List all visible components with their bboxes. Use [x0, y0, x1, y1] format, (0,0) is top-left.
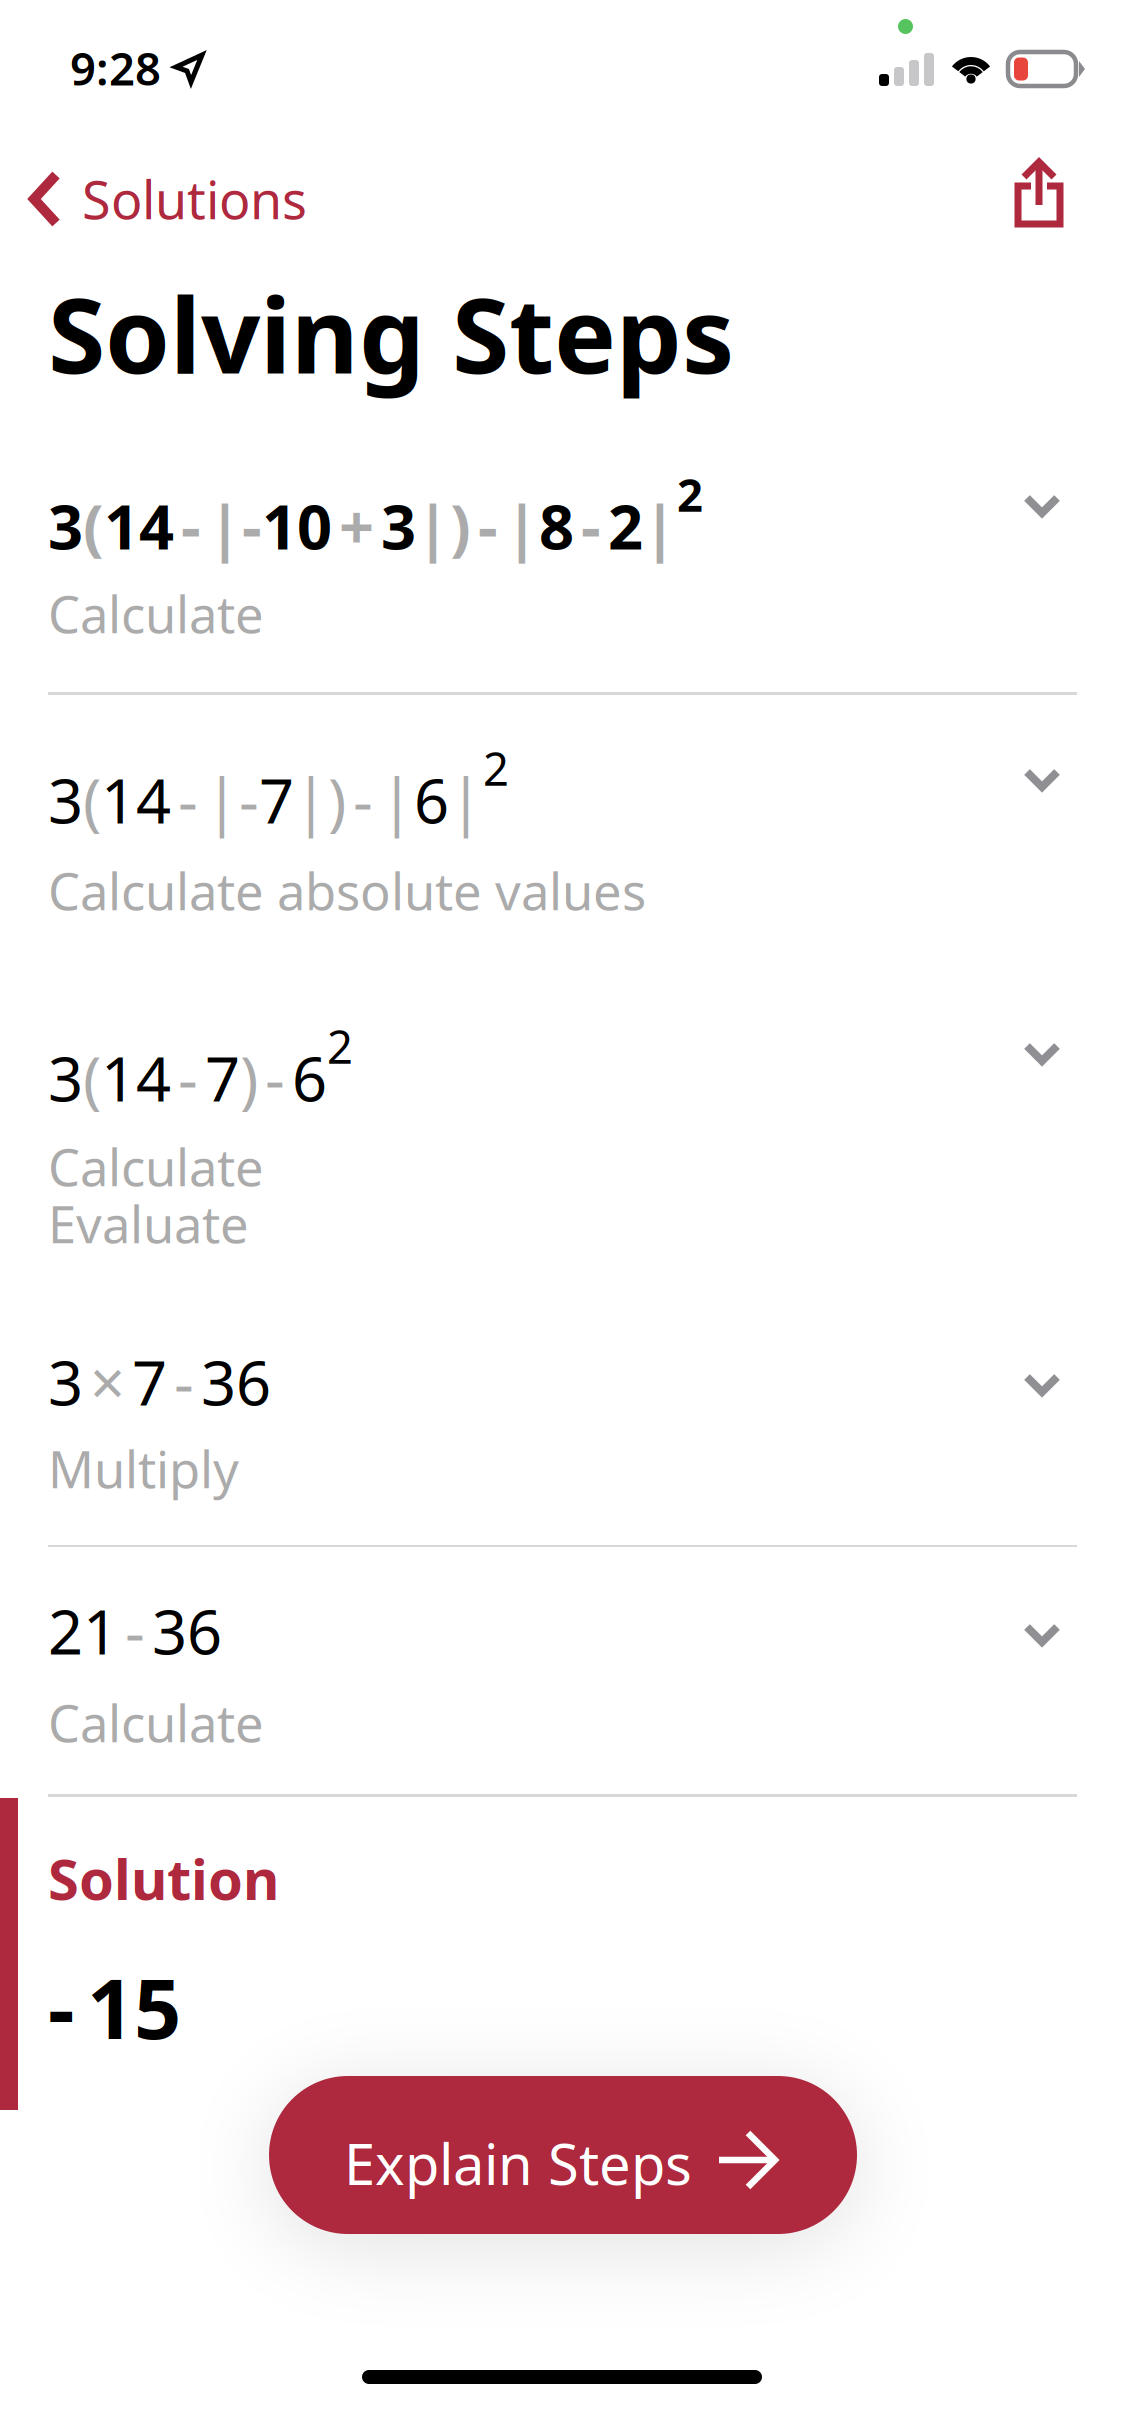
staticText: 7	[132, 1341, 167, 1422]
staticText: 2	[327, 1016, 353, 1076]
staticText: 6	[414, 759, 449, 840]
staticText: (	[83, 759, 101, 840]
staticText: 10	[262, 485, 332, 566]
button[interactable]: Share	[1014, 158, 1064, 228]
staticText: 7	[259, 759, 294, 840]
staticText: Solutions	[82, 164, 307, 234]
staticText: -	[178, 1037, 198, 1118]
staticText: |	[205, 759, 239, 840]
staticText: 3	[48, 1037, 83, 1118]
staticText: 8	[539, 485, 574, 566]
staticText: 6	[292, 1037, 327, 1118]
staticText: -	[174, 1341, 194, 1422]
staticText: |	[208, 485, 242, 566]
staticText: )	[240, 1037, 258, 1118]
staticText: 36	[152, 1590, 222, 1671]
staticText: 14	[104, 485, 174, 566]
staticText: -	[239, 759, 259, 840]
staticText: -	[478, 485, 498, 566]
staticText: 3	[48, 485, 83, 566]
staticText: (	[83, 1037, 101, 1118]
staticText: Calculate absolute values	[48, 857, 646, 924]
staticText: 7	[205, 1037, 240, 1118]
staticText: 3	[48, 1341, 83, 1422]
staticText: Calculate	[48, 1689, 264, 1756]
staticText: 14	[101, 759, 171, 840]
button[interactable]: 21	[0, 1547, 1125, 1797]
staticText: -	[181, 485, 201, 566]
staticText: Evaluate	[48, 1190, 249, 1257]
staticText: (	[83, 485, 104, 566]
staticText: |	[449, 759, 483, 840]
staticText: Solving Steps	[48, 264, 734, 402]
staticText: Solution	[48, 1841, 279, 1915]
staticText: 3	[48, 759, 83, 840]
staticText: |	[416, 485, 450, 566]
staticText: -	[125, 1590, 145, 1671]
staticText: Calculate	[48, 1133, 264, 1200]
staticText: 2	[483, 738, 509, 798]
staticText: Calculate	[48, 580, 264, 647]
button[interactable]: 3	[0, 1297, 1125, 1548]
staticText: 14	[101, 1037, 171, 1118]
staticText: -	[242, 485, 262, 566]
staticText: -	[48, 1952, 74, 2062]
staticText: -	[581, 485, 601, 566]
button[interactable]: 3	[0, 695, 1125, 968]
staticText: 36	[201, 1341, 271, 1422]
staticText: )	[450, 485, 471, 566]
button[interactable]: Explain Steps	[269, 2076, 857, 2234]
staticText: -	[178, 759, 198, 840]
staticText: 2	[677, 464, 703, 524]
staticText: |	[294, 759, 328, 840]
staticText: 21	[48, 1590, 118, 1671]
staticText: 3	[381, 485, 416, 566]
button[interactable]: 3	[0, 470, 1125, 695]
staticText: 2	[608, 485, 643, 566]
staticText: -	[265, 1037, 285, 1118]
staticText: +	[339, 485, 374, 566]
staticText: Multiply	[48, 1435, 239, 1502]
staticText: 15	[87, 1952, 181, 2062]
button[interactable]: Solutions	[28, 170, 448, 228]
staticText: ×	[90, 1341, 125, 1422]
staticText: |	[380, 759, 414, 840]
staticText: Explain Steps	[344, 2126, 692, 2200]
staticText: -	[353, 759, 373, 840]
staticText: )	[328, 759, 346, 840]
staticText: |	[505, 485, 539, 566]
staticText: |	[643, 485, 677, 566]
staticText: 9:28	[70, 38, 161, 98]
button[interactable]: 3	[0, 965, 1125, 1300]
